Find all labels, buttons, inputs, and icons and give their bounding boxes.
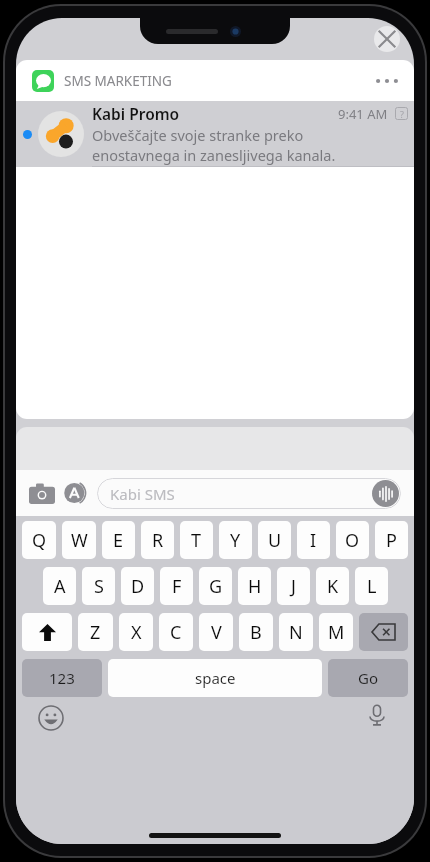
staticText: G (209, 574, 223, 599)
button[interactable]: Dictation (366, 704, 388, 726)
button[interactable]: O (336, 521, 369, 559)
button[interactable]: Kabi SMS (97, 478, 401, 509)
staticText: E (113, 528, 124, 553)
button[interactable]: Kabi Promo (16, 101, 414, 167)
staticText: C (170, 620, 182, 645)
staticText: I (310, 528, 317, 553)
staticText: U (268, 528, 282, 553)
staticText: L (367, 574, 377, 599)
staticText: 9:41 AM (338, 105, 388, 123)
button[interactable]: Go (328, 659, 408, 697)
staticText: Q (32, 528, 47, 553)
button[interactable]: Audio message (372, 480, 399, 507)
button[interactable]: S (82, 567, 115, 605)
button[interactable]: J (277, 567, 310, 605)
button[interactable]: B (239, 613, 273, 651)
staticText: Z (90, 620, 101, 645)
button[interactable]: L (355, 567, 388, 605)
staticText: F (172, 574, 182, 599)
button[interactable]: Q (22, 521, 56, 559)
staticText: J (291, 574, 296, 599)
staticText: N (289, 620, 303, 645)
button[interactable]: Apps (59, 476, 93, 510)
button[interactable]: X (119, 613, 153, 651)
button[interactable]: Camera (25, 476, 59, 510)
button[interactable]: G (199, 567, 232, 605)
button[interactable]: T (180, 521, 213, 559)
button[interactable]: M (319, 613, 353, 651)
button[interactable]: Emoji (38, 705, 64, 731)
button[interactable]: H (238, 567, 271, 605)
button[interactable]: U (258, 521, 291, 559)
staticText: D (131, 574, 145, 599)
staticText: ? (400, 108, 404, 120)
staticText: Y (230, 528, 241, 553)
button[interactable]: R (141, 521, 174, 559)
staticText: 123 (49, 668, 75, 688)
staticText: SMS MARKETING (64, 72, 172, 90)
staticText: K (327, 574, 339, 599)
button[interactable]: F (160, 567, 193, 605)
button[interactable]: N (279, 613, 313, 651)
staticText: H (248, 574, 262, 599)
staticText: W (71, 528, 88, 553)
staticText: T (191, 528, 202, 553)
staticText: Kabi Promo (92, 103, 180, 124)
button[interactable]: D (121, 567, 154, 605)
button[interactable]: Delete (359, 613, 408, 651)
staticText: Kabi SMS (110, 484, 175, 504)
staticText: P (386, 528, 397, 553)
button[interactable]: Close (374, 26, 400, 52)
button[interactable]: Z (78, 613, 113, 651)
button[interactable]: K (316, 567, 349, 605)
staticText: Obveščajte svoje stranke preko (92, 125, 304, 145)
staticText: Go (358, 668, 378, 688)
staticText: enostavnega in zanesljivega kanala. (92, 145, 336, 165)
button[interactable]: Y (219, 521, 252, 559)
button[interactable]: space (108, 659, 322, 697)
button[interactable]: Shift (22, 613, 72, 651)
staticText: M (328, 620, 345, 645)
button[interactable]: A (43, 567, 76, 605)
staticText: S (94, 574, 104, 599)
button[interactable]: E (102, 521, 135, 559)
button[interactable]: W (62, 521, 96, 559)
button[interactable]: 123 (22, 659, 102, 697)
staticText: V (211, 620, 222, 645)
button[interactable]: V (199, 613, 233, 651)
staticText: X (131, 620, 142, 645)
button[interactable]: SMS MARKETING (16, 60, 414, 101)
staticText: B (250, 620, 262, 645)
button[interactable]: P (375, 521, 408, 559)
staticText: O (345, 528, 360, 553)
staticText: R (152, 528, 164, 553)
button[interactable]: I (297, 521, 330, 559)
button[interactable]: C (159, 613, 193, 651)
staticText: space (195, 668, 236, 688)
staticText: A (54, 574, 66, 599)
